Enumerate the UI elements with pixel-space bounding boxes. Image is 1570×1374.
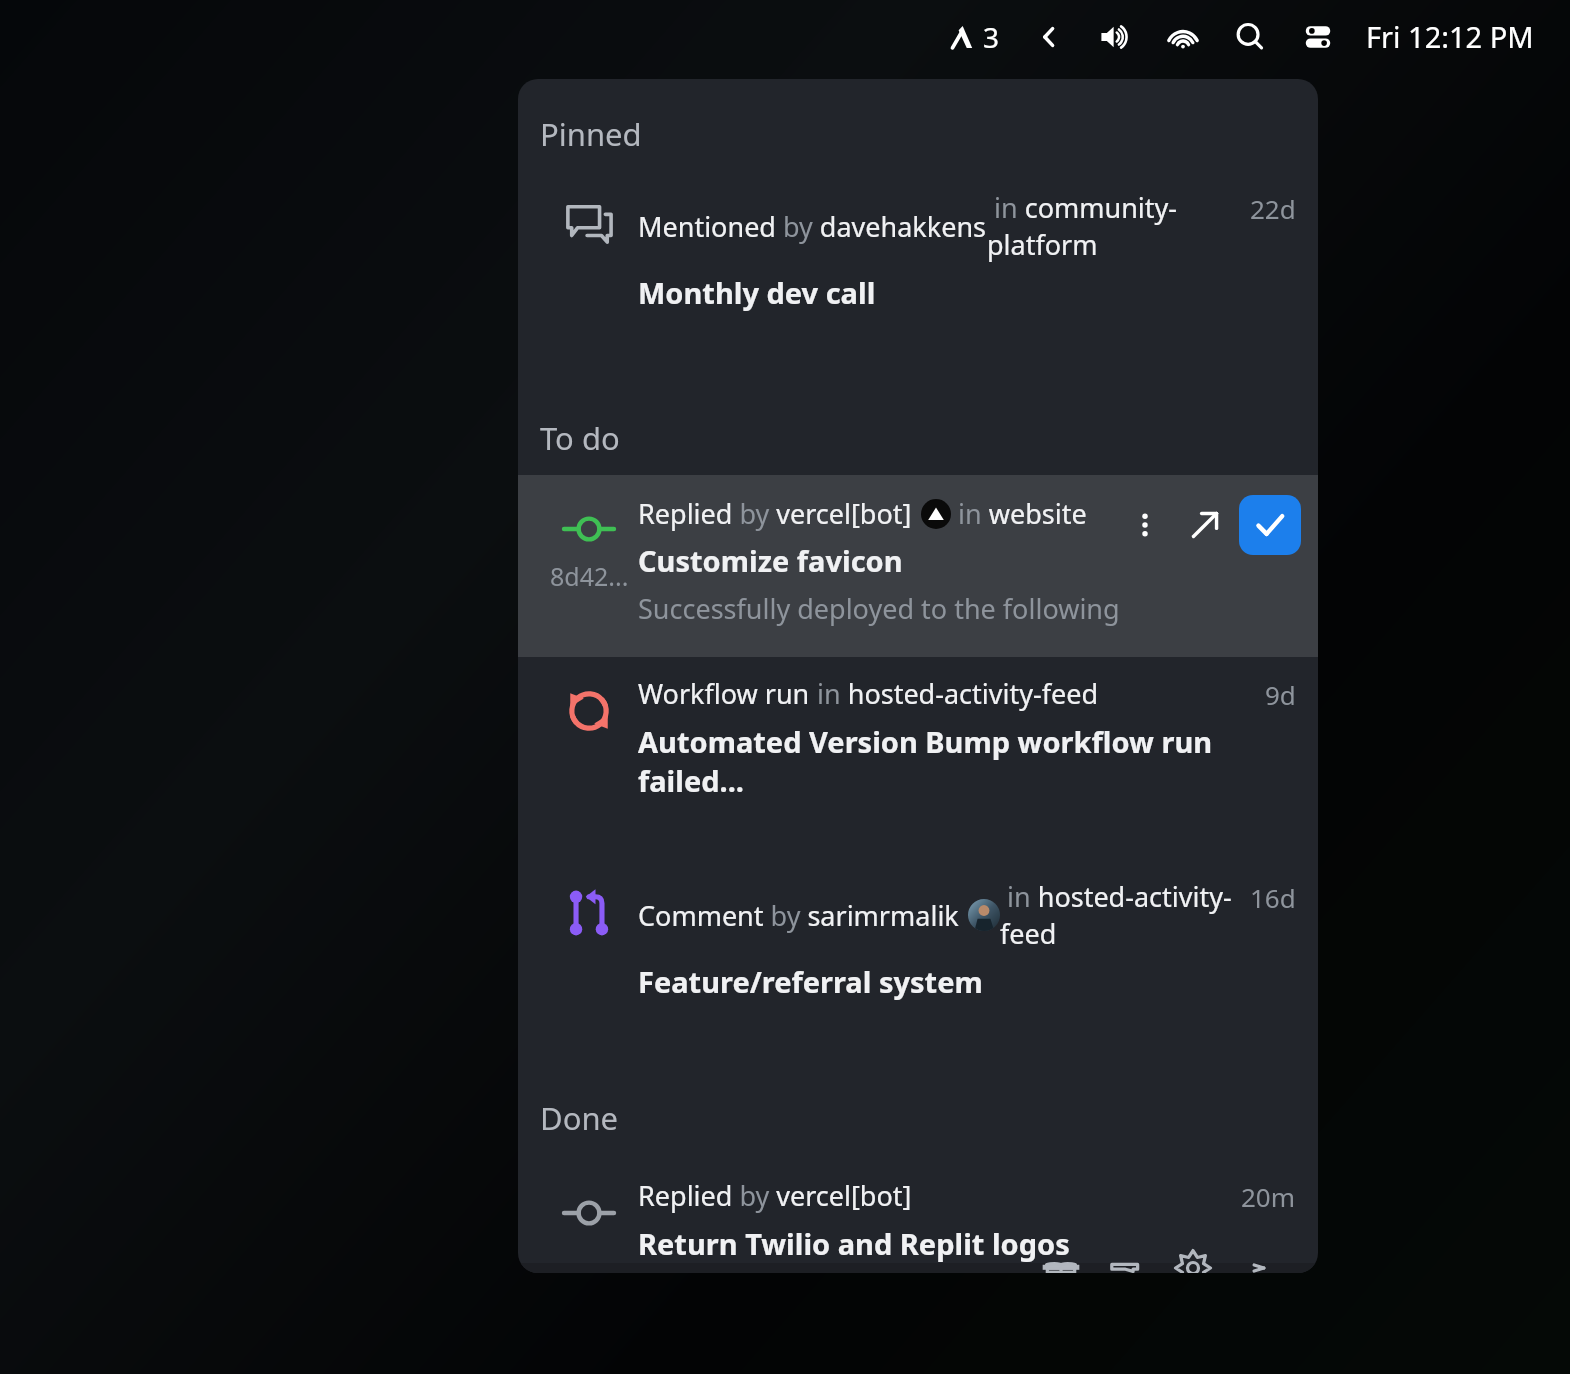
other: Volume (1098, 20, 1132, 54)
button[interactable]: Feedback (1096, 1263, 1158, 1273)
staticText: 9d (1265, 677, 1296, 712)
staticText: Mentioned by davehakkens (638, 208, 987, 245)
staticText: 3 (983, 18, 1000, 56)
staticText: Comment by sarimrmalik (638, 897, 959, 934)
other: Control Center (1300, 19, 1336, 55)
button[interactable]: Mentioned by davehakkens (518, 189, 1318, 312)
staticText: in hosted-activity-feed (810, 675, 1098, 712)
staticText: Done (540, 1097, 619, 1139)
staticText: 22d (1250, 191, 1296, 226)
button[interactable]: Settings (1162, 1263, 1224, 1273)
other: Search (1234, 21, 1266, 53)
staticText: Successfully deployed to the following (638, 590, 1120, 627)
staticText: in website (951, 495, 1087, 532)
button[interactable]: Expand (1228, 1263, 1290, 1273)
staticText: Automated Version Bump workflow run fail… (638, 722, 1265, 800)
button[interactable]: Open externally (1179, 495, 1231, 555)
staticText: in community-platform (987, 189, 1250, 263)
button[interactable]: Gifts (1030, 1263, 1092, 1273)
staticText: Pinned (540, 113, 642, 155)
other: Wi-Fi (1166, 20, 1200, 54)
staticText: Replied by vercel[bot] (638, 1177, 912, 1214)
staticText: Customize favicon (638, 541, 903, 580)
button[interactable]: Mark done (1239, 495, 1301, 555)
staticText: 16d (1250, 880, 1296, 915)
staticText: Fri 12:12 PM (1366, 17, 1534, 56)
staticText: Monthly dev call (638, 273, 876, 312)
staticText: To do (540, 417, 620, 459)
staticText: Replied by vercel[bot] (638, 495, 912, 532)
staticText: Workflow run (638, 675, 810, 712)
button[interactable]: Workflow run (518, 675, 1318, 800)
staticText: 8d42... (550, 559, 629, 593)
staticText: 20m (1241, 1179, 1296, 1214)
other: Previous (1034, 22, 1064, 52)
staticText: in hosted-activity-feed (1000, 878, 1250, 952)
button[interactable]: Comment by sarimrmalik (518, 878, 1318, 1001)
staticText: Return Twilio and Replit logos (638, 1224, 1070, 1263)
button[interactable]: 8d42... (518, 475, 1318, 657)
other: App (945, 20, 979, 54)
button[interactable]: More options (1123, 495, 1167, 555)
button[interactable]: Replied by vercel[bot] (518, 1177, 1318, 1263)
staticText: Feature/referral system (638, 962, 983, 1001)
